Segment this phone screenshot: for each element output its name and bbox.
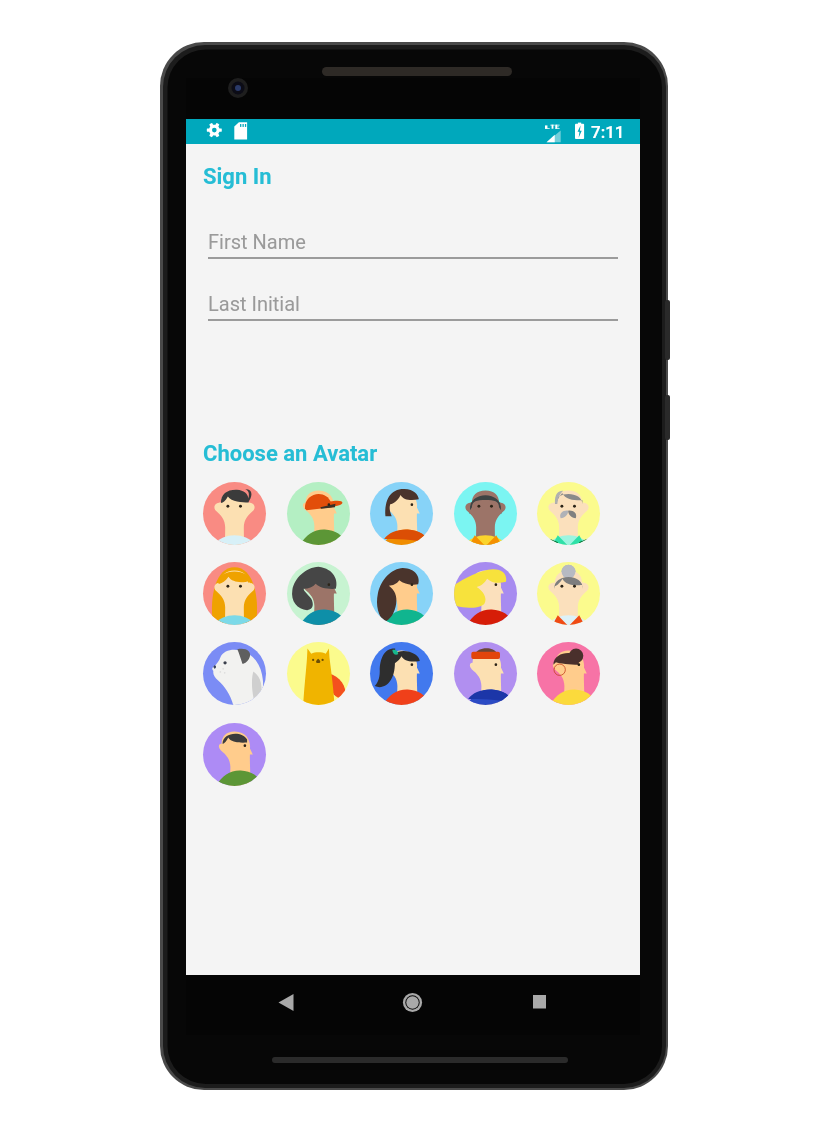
button[interactable]: Avatar 7 (287, 562, 350, 625)
button[interactable]: Avatar 15 (537, 642, 600, 705)
button[interactable]: Avatar 6 (203, 562, 266, 625)
button[interactable]: Last Initial (208, 292, 618, 321)
staticText: 7:11 (591, 122, 625, 142)
staticText: Sign In (203, 164, 272, 190)
button[interactable]: First Name (208, 230, 618, 259)
staticText: Choose an Avatar (203, 441, 378, 467)
button[interactable]: Avatar 3 (370, 482, 433, 545)
button[interactable]: Avatar 8 (370, 562, 433, 625)
staticText: First Name (208, 230, 306, 253)
button[interactable]: Avatar 5 (537, 482, 600, 545)
button[interactable]: Avatar 13 (370, 642, 433, 705)
staticText: Last Initial (208, 292, 300, 315)
button[interactable]: Avatar 14 (454, 642, 517, 705)
button[interactable]: Avatar 4 (454, 482, 517, 545)
button[interactable]: Avatar 11 (203, 642, 266, 705)
button[interactable]: Avatar 10 (537, 562, 600, 625)
button[interactable]: Avatar 9 (454, 562, 517, 625)
button[interactable]: Avatar 16 (203, 723, 266, 786)
button[interactable]: Avatar 1 (203, 482, 266, 545)
button[interactable]: Avatar 2 (287, 482, 350, 545)
button[interactable]: Avatar 12 (287, 642, 350, 705)
